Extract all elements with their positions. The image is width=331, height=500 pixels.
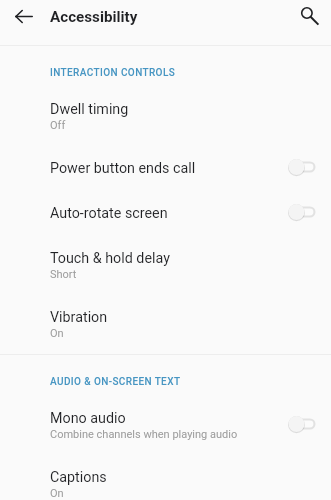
staticText: On bbox=[50, 327, 64, 340]
staticText: Combine channels when playing audio bbox=[50, 428, 238, 441]
staticText: AUDIO & ON-SCREEN TEXT bbox=[50, 376, 181, 388]
staticText: Accessibility bbox=[50, 8, 138, 26]
staticText: On bbox=[50, 487, 64, 500]
staticText: Off bbox=[50, 119, 66, 132]
staticText: Power button ends call bbox=[50, 160, 196, 177]
button[interactable]: Power button ends call bbox=[0, 146, 331, 191]
button[interactable]: Auto-rotate screen bbox=[0, 191, 331, 236]
staticText: Captions bbox=[50, 469, 107, 486]
button[interactable]: Toggle bbox=[287, 158, 317, 176]
staticText: Dwell timing bbox=[50, 101, 129, 118]
button[interactable]: Captions bbox=[0, 455, 331, 500]
button[interactable]: Toggle bbox=[287, 203, 317, 221]
button[interactable]: Back bbox=[5, 3, 43, 30]
button[interactable]: Toggle bbox=[287, 415, 317, 433]
button[interactable]: Dwell timing bbox=[0, 87, 331, 146]
button[interactable]: Mono audio bbox=[0, 396, 331, 455]
staticText: Short bbox=[50, 268, 77, 281]
button[interactable]: Touch & hold delay bbox=[0, 236, 331, 295]
staticText: INTERACTION CONTROLS bbox=[50, 67, 176, 79]
staticText: Auto-rotate screen bbox=[50, 205, 168, 222]
staticText: Touch & hold delay bbox=[50, 250, 170, 267]
staticText: Vibration bbox=[50, 309, 108, 326]
button[interactable]: Search bbox=[293, 2, 323, 30]
button[interactable]: Vibration bbox=[0, 295, 331, 354]
staticText: Mono audio bbox=[50, 410, 126, 427]
